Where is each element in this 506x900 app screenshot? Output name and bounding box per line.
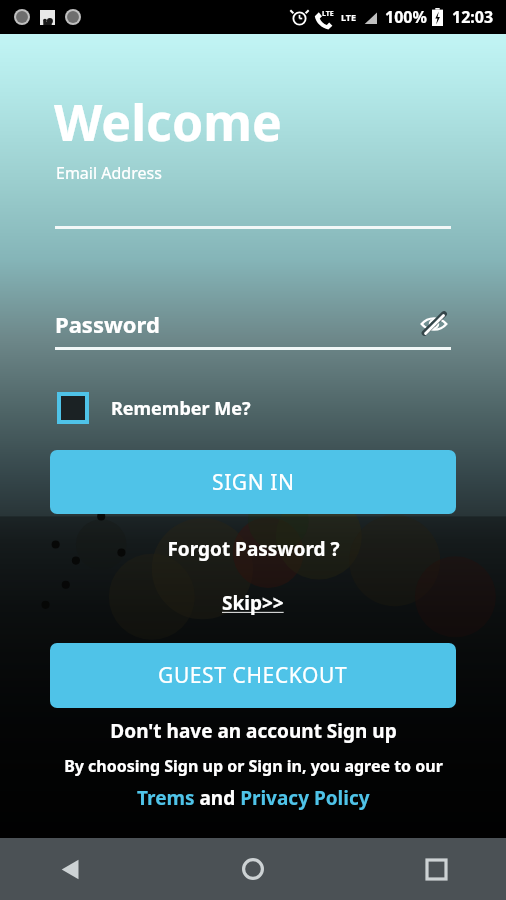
staticText: LTE (322, 9, 334, 19)
button[interactable]: Recents (412, 845, 460, 893)
staticText: SIGN IN (212, 468, 295, 497)
staticText: Email Address (56, 162, 162, 184)
staticText: LTE (341, 11, 357, 23)
staticText: Password (55, 309, 160, 339)
button[interactable]: Back (46, 845, 94, 893)
staticText: Remember Me? (111, 396, 251, 421)
button[interactable]: Skip>> (222, 590, 284, 616)
staticText: 100% (385, 6, 427, 28)
button[interactable]: Remember Me? (59, 394, 251, 422)
button[interactable]: GUEST CHECKOUT (50, 643, 456, 708)
staticText: GUEST CHECKOUT (158, 661, 348, 690)
button[interactable]: By choosing Sign up or Sign in, you agre… (64, 755, 443, 777)
button[interactable]: SIGN IN (50, 450, 456, 514)
staticText: Welcome (54, 88, 282, 156)
button[interactable]: Home (229, 845, 277, 893)
staticText: 12:03 (452, 6, 494, 28)
button[interactable]: Password (55, 307, 451, 341)
button[interactable]: Don't have an account Sign up (110, 718, 397, 744)
button[interactable]: Trems and Privacy Policy (137, 785, 370, 811)
button[interactable]: Show password (417, 307, 451, 341)
button[interactable]: Forgot Password ? (167, 536, 340, 562)
